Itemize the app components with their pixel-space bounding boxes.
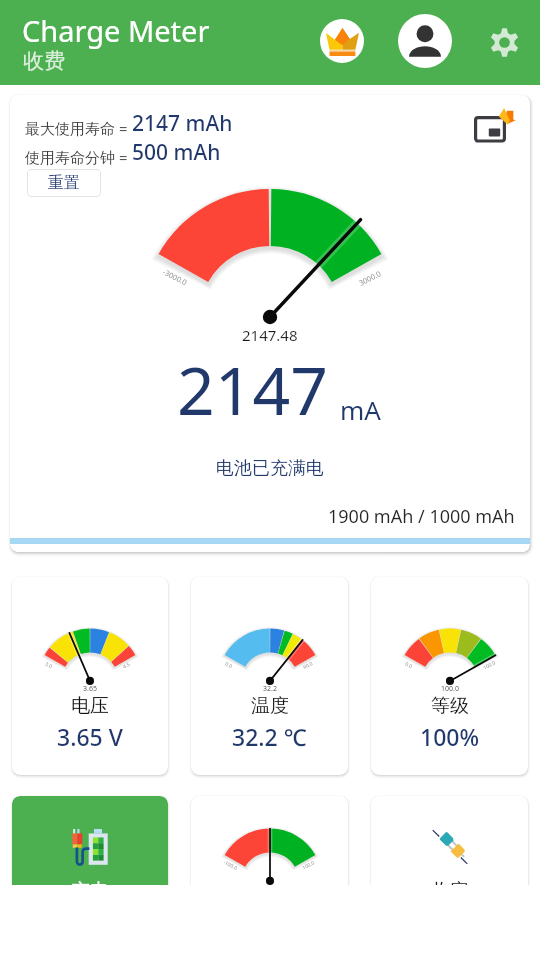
button[interactable]: 3.0 [12, 577, 168, 775]
staticText: 最大使用寿命 = [25, 118, 132, 138]
button[interactable]: Settings [482, 20, 526, 64]
staticText: 500 mAh [132, 138, 221, 167]
button[interactable]: Picture in picture [466, 101, 518, 153]
staticText: 0.0 [404, 661, 414, 670]
staticText: 32.2 [263, 684, 277, 694]
button[interactable]: Premium [320, 19, 364, 63]
staticText: 2147.48 [242, 325, 298, 345]
staticText: 100% [420, 721, 480, 752]
button[interactable]: Account [398, 14, 452, 68]
button[interactable]: 充电 [12, 796, 168, 885]
staticText: 100.0 [482, 659, 497, 671]
staticText: 60.0 [302, 660, 314, 671]
staticText: 1900 mAh / 1000 mAh [328, 504, 515, 529]
staticText: 重置 [48, 173, 80, 193]
staticText: 3.0 [44, 661, 54, 670]
button[interactable]: 重置 [27, 169, 101, 197]
staticText: 等级 [431, 694, 469, 718]
staticText: 100.0 [301, 859, 316, 871]
staticText: 3.65 [83, 684, 97, 694]
staticText: 温度 [251, 694, 289, 718]
staticText: 收费 [23, 48, 65, 74]
staticText: mA [340, 392, 381, 427]
staticText: 收容 [431, 879, 469, 885]
staticText: 电池已充满电 [216, 457, 324, 480]
button[interactable]: 收容 [371, 796, 528, 885]
staticText: 0.0 [224, 661, 234, 670]
staticText: 充电 [71, 879, 109, 885]
staticText: 3.65 V [57, 721, 123, 752]
button[interactable]: -100.0 [191, 796, 348, 885]
staticText: -100.0 [222, 859, 239, 872]
staticText: 2147 [177, 344, 329, 434]
staticText: 100.0 [441, 684, 459, 694]
staticText: 3000.0 [357, 268, 383, 288]
staticText: Charge Meter [22, 11, 210, 50]
staticText: 电压 [71, 694, 109, 718]
staticText: 2147 mAh [132, 109, 233, 138]
button[interactable]: 0.0 [191, 577, 348, 775]
staticText: -3000.0 [161, 267, 189, 287]
staticText: 4.5 [122, 661, 132, 670]
staticText: 使用寿命分钟 = [25, 147, 132, 167]
staticText: 32.2 ℃ [232, 721, 307, 752]
button[interactable]: 0.0 [371, 577, 528, 775]
